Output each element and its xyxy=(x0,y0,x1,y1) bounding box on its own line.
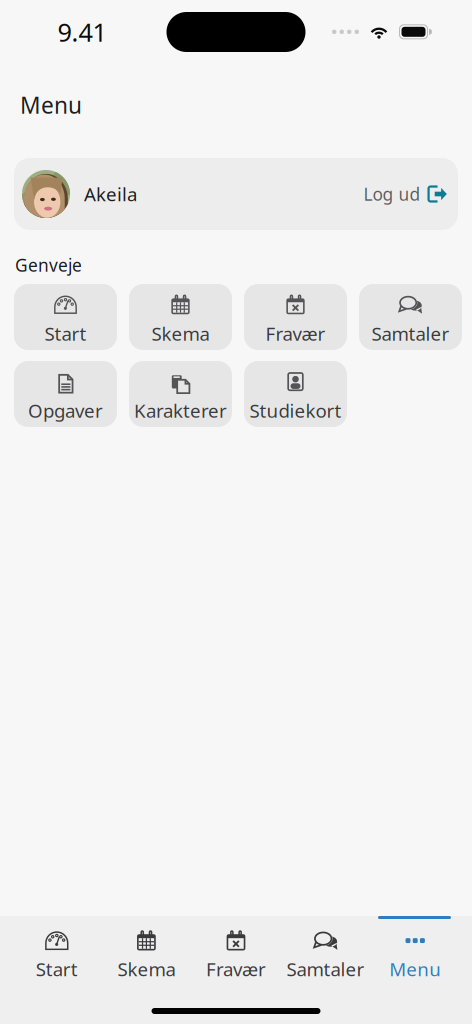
button[interactable]: Start xyxy=(14,284,117,350)
staticText: Studiekort xyxy=(249,398,341,423)
staticText: Karakterer xyxy=(134,398,227,423)
staticText: Fravær xyxy=(265,321,325,346)
staticText: Genveje xyxy=(15,253,82,276)
staticText: Opgaver xyxy=(28,398,103,423)
button[interactable]: Skema xyxy=(129,284,232,350)
button[interactable]: Skema xyxy=(102,927,191,981)
button[interactable]: Samtaler xyxy=(281,927,370,981)
staticText: Samtaler xyxy=(287,957,365,981)
button[interactable]: Studiekort xyxy=(244,361,347,427)
staticText: Samtaler xyxy=(371,321,449,346)
staticText: Menu xyxy=(20,90,82,120)
button[interactable]: Opgaver xyxy=(14,361,117,427)
staticText: Skema xyxy=(117,957,175,981)
staticText: Menu xyxy=(389,957,441,981)
button[interactable]: Start xyxy=(12,927,102,981)
staticText: 9.41 xyxy=(57,15,106,49)
staticText: Fravær xyxy=(206,957,266,981)
button[interactable]: Fravær xyxy=(244,284,347,350)
button[interactable]: Samtaler xyxy=(359,284,462,350)
staticText: Skema xyxy=(151,321,209,346)
button[interactable]: Menu xyxy=(370,927,460,981)
button[interactable]: Karakterer xyxy=(129,361,232,427)
button[interactable]: Log ud xyxy=(353,166,448,221)
staticText: Start xyxy=(36,957,78,981)
button[interactable]: Fravær xyxy=(191,927,281,981)
staticText: Akeila xyxy=(84,182,137,206)
staticText: Start xyxy=(44,321,86,346)
staticText: Log ud xyxy=(363,182,420,205)
